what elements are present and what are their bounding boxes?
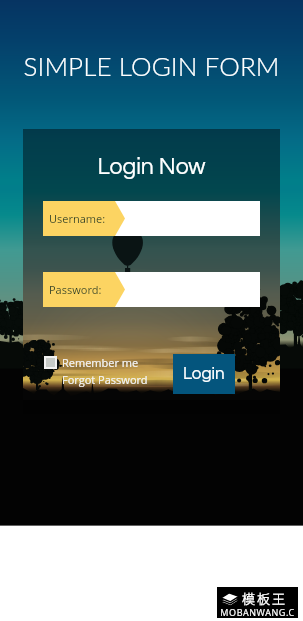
staticText: Login Now xyxy=(23,155,280,179)
button[interactable]: Login xyxy=(173,354,235,394)
staticText: MOBANWANG.COM xyxy=(217,606,298,618)
staticText: 模板王 xyxy=(242,589,288,606)
button[interactable]: Forgot Password xyxy=(62,372,148,387)
button[interactable]: Remember me xyxy=(44,355,139,370)
button[interactable]: Password: xyxy=(23,272,280,307)
staticText: Remember me xyxy=(62,355,139,370)
button[interactable]: Username: xyxy=(23,201,280,236)
staticText: SIMPLE LOGIN FORM xyxy=(0,50,303,81)
staticText: Login xyxy=(183,365,225,383)
staticText: Password: xyxy=(49,282,102,297)
staticText: Username: xyxy=(49,211,106,226)
